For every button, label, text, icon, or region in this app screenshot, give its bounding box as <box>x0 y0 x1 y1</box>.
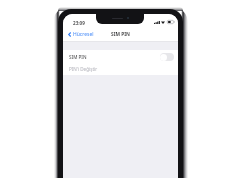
staticText: SIM PIN <box>69 54 87 60</box>
staticText: 23:09 <box>73 20 85 26</box>
staticText: SIM PIN <box>111 31 131 38</box>
staticText: Hücresel <box>73 31 94 38</box>
button[interactable]: SIM PIN switch <box>160 53 174 61</box>
staticText: PIN'i Değiştir <box>69 66 98 72</box>
button[interactable]: Hücresel <box>63 29 98 40</box>
button[interactable]: PIN'i Değiştir <box>63 63 178 75</box>
button[interactable]: SIM PIN <box>63 50 178 63</box>
